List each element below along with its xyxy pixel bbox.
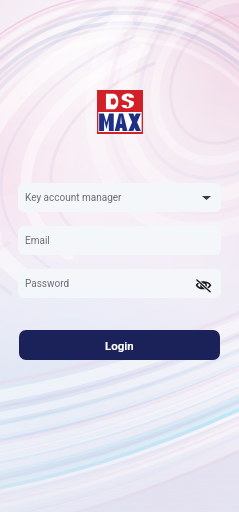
button[interactable]: Key account manager bbox=[18, 183, 221, 212]
staticText: Password bbox=[25, 278, 70, 290]
button[interactable]: Show password bbox=[193, 274, 213, 294]
staticText: Key account manager bbox=[25, 192, 122, 204]
button[interactable]: Password bbox=[18, 269, 221, 298]
staticText: Email bbox=[25, 235, 50, 247]
staticText: Login bbox=[105, 339, 134, 352]
button[interactable]: Email bbox=[18, 226, 221, 255]
button[interactable]: Login bbox=[19, 330, 220, 360]
